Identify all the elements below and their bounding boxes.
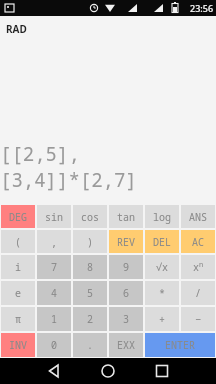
button[interactable]: sin [37, 205, 71, 228]
button[interactable]: 2 [73, 307, 107, 331]
staticText: e [15, 286, 21, 300]
staticText: RAD [6, 22, 27, 36]
staticText: log [153, 210, 171, 224]
button[interactable]: RAD [6, 22, 27, 36]
staticText: AC [192, 235, 204, 249]
staticText: 7 [51, 260, 57, 274]
button[interactable]: / [181, 281, 215, 305]
staticText: + [159, 312, 165, 326]
button[interactable]: 9 [109, 255, 143, 279]
button[interactable]: tan [109, 205, 143, 228]
staticText: . [87, 338, 93, 352]
button[interactable]: * [145, 281, 179, 305]
staticText: 5 [87, 286, 93, 300]
button[interactable]: 1 [37, 307, 71, 331]
staticText: cos [81, 210, 99, 224]
button[interactable]: + [145, 307, 179, 331]
button[interactable]: xn [181, 255, 215, 279]
staticText: ENTER [165, 338, 195, 352]
staticText: 9 [123, 260, 129, 274]
staticText: 1 [51, 312, 57, 326]
staticText: [[2,5],[3,4]]*[2,7] [0, 141, 213, 193]
staticText: 3 [123, 312, 129, 326]
staticText: ANS [189, 210, 207, 224]
button[interactable]: cos [73, 205, 107, 228]
staticText: xn [193, 260, 204, 274]
button[interactable]: DEL [145, 230, 179, 253]
button[interactable]: − [181, 307, 215, 331]
staticText: 0 [51, 338, 57, 352]
button[interactable]: log [145, 205, 179, 228]
staticText: DEL [153, 235, 171, 249]
button[interactable]: DEG [1, 205, 35, 228]
button[interactable]: 4 [37, 281, 71, 305]
staticText: REV [117, 235, 135, 249]
staticText: ( [15, 235, 21, 249]
button[interactable]: 5 [73, 281, 107, 305]
button[interactable]: 7 [37, 255, 71, 279]
staticText: i [15, 260, 21, 274]
staticText: 6 [123, 286, 129, 300]
button[interactable]: , [37, 230, 71, 253]
staticText: DEG [9, 210, 27, 224]
button[interactable]: ) [73, 230, 107, 253]
button[interactable]: π [1, 307, 35, 331]
button[interactable]: ENTER [145, 333, 215, 357]
staticText: 4 [51, 286, 57, 300]
button[interactable]: AC [181, 230, 215, 253]
staticText: * [159, 286, 165, 300]
button[interactable]: ( [1, 230, 35, 253]
button[interactable]: 6 [109, 281, 143, 305]
staticText: EXX [117, 338, 135, 352]
button[interactable]: INV [1, 333, 35, 357]
staticText: ) [87, 235, 93, 249]
staticText: √x [156, 260, 168, 274]
staticText: 23:56 [190, 2, 214, 14]
button[interactable]: i [1, 255, 35, 279]
button[interactable]: ANS [181, 205, 215, 228]
staticText: / [195, 286, 201, 300]
staticText: , [51, 235, 57, 249]
button[interactable]: √x [145, 255, 179, 279]
button[interactable]: 8 [73, 255, 107, 279]
button[interactable]: 0 [37, 333, 71, 357]
staticText: 2 [87, 312, 93, 326]
button[interactable]: REV [109, 230, 143, 253]
button[interactable]: e [1, 281, 35, 305]
button[interactable]: EXX [109, 333, 143, 357]
staticText: − [195, 312, 201, 326]
staticText: sin [45, 210, 63, 224]
staticText: INV [9, 338, 27, 352]
staticText: 8 [87, 260, 93, 274]
staticText: tan [117, 210, 135, 224]
button[interactable]: 3 [109, 307, 143, 331]
staticText: π [15, 312, 21, 326]
